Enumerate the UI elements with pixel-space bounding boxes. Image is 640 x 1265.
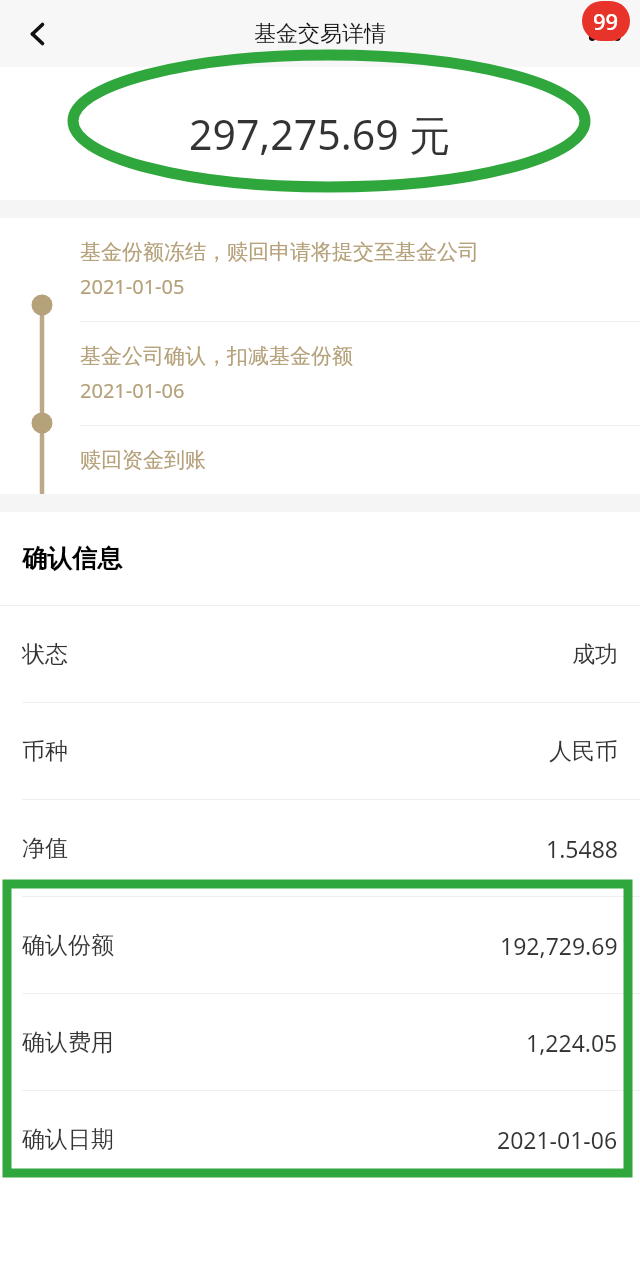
staticText: 确认费用 — [22, 1028, 114, 1057]
button[interactable]: Back — [12, 8, 64, 60]
staticText: 确认份额 — [22, 931, 114, 960]
staticText: 基金公司确认，扣减基金份额 — [80, 343, 353, 369]
staticText: 确认日期 — [22, 1125, 114, 1154]
button[interactable]: 基金份额冻结，赎回申请将提交至基金公司 — [0, 218, 640, 321]
button[interactable]: 基金公司确认，扣减基金份额 — [0, 322, 640, 425]
button[interactable]: 确认费用 — [0, 994, 640, 1090]
staticText: 297,275.69 元 — [189, 106, 451, 162]
staticText: 基金份额冻结，赎回申请将提交至基金公司 — [80, 239, 479, 265]
button[interactable]: 状态 — [0, 606, 640, 702]
button[interactable]: 确认份额 — [0, 897, 640, 993]
button[interactable]: More options — [576, 5, 634, 63]
staticText: 2021-01-06 — [497, 1124, 618, 1155]
staticText: 确认信息 — [22, 543, 122, 574]
staticText: 2021-01-06 — [80, 377, 185, 404]
staticText: 净值 — [22, 834, 68, 863]
staticText: 1.5488 — [546, 833, 618, 864]
button[interactable]: 净值 — [0, 800, 640, 896]
button[interactable]: 确认日期 — [0, 1091, 640, 1187]
staticText: 币种 — [22, 737, 68, 766]
staticText: 状态 — [22, 640, 68, 669]
staticText: 1,224.05 — [526, 1027, 618, 1058]
staticText: 赎回资金到账 — [80, 447, 206, 473]
staticText: 人民币 — [549, 737, 618, 766]
staticText: 成功 — [572, 640, 618, 669]
button[interactable]: 币种 — [0, 703, 640, 799]
staticText: 2021-01-05 — [80, 273, 185, 300]
staticText: 192,729.69 — [500, 930, 618, 961]
button[interactable]: 赎回资金到账 — [0, 426, 640, 494]
staticText: 基金交易详情 — [254, 20, 386, 48]
staticText: 99 — [593, 6, 619, 36]
